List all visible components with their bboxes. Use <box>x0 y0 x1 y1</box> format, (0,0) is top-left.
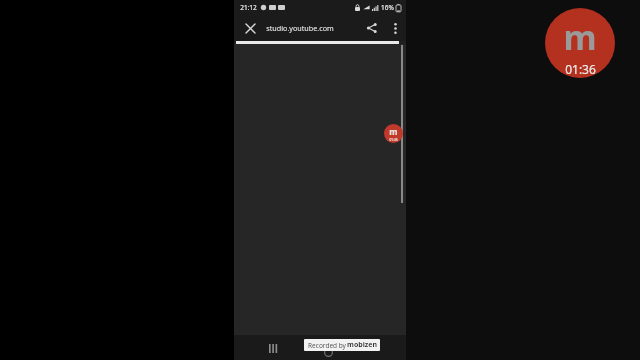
button[interactable]: More options <box>386 19 404 37</box>
staticText: 21:12 <box>240 3 257 12</box>
staticText: m <box>389 126 398 138</box>
staticText: 01:36 <box>389 138 398 142</box>
staticText: 16% <box>381 3 394 12</box>
staticText: 01:36 <box>565 61 596 77</box>
staticText: Recorded by <box>307 341 347 350</box>
button[interactable]: Share <box>362 18 382 38</box>
button[interactable]: Mobizen recorder <box>384 124 403 143</box>
staticText: mobizen <box>347 340 377 350</box>
button[interactable]: studio.youtube.com <box>266 17 356 39</box>
staticText: studio.youtube.com <box>266 23 334 33</box>
staticText: m <box>563 14 597 60</box>
button[interactable]: Recent apps <box>262 337 284 359</box>
button[interactable]: Close <box>240 18 260 38</box>
button[interactable]: Home <box>318 342 338 360</box>
